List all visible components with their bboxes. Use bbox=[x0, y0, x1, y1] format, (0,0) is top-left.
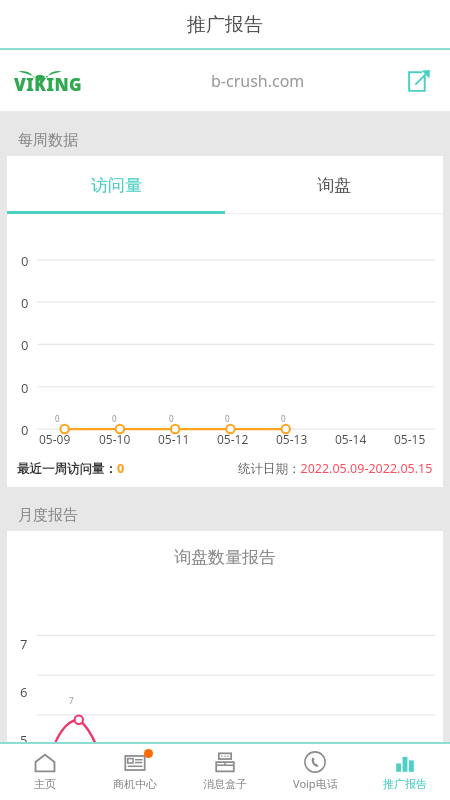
staticText: 统计日期：2022.05.09-2022.05.15 bbox=[238, 460, 433, 477]
staticText: 5 bbox=[20, 731, 28, 749]
staticText: Voip电话 bbox=[293, 776, 338, 791]
staticText: 05-10 bbox=[99, 431, 131, 447]
staticText: 0 bbox=[21, 336, 29, 354]
staticText: 05-14 bbox=[335, 431, 367, 447]
staticText: 主页 bbox=[34, 777, 56, 791]
staticText: 推广报告 bbox=[383, 777, 427, 791]
staticText: 访问量 bbox=[91, 175, 142, 196]
staticText: b-crush.com bbox=[211, 70, 305, 92]
staticText: 05-11 bbox=[158, 431, 190, 447]
staticText: 0 bbox=[21, 252, 29, 270]
staticText: 05-12 bbox=[217, 431, 249, 447]
staticText: 7 bbox=[69, 695, 74, 706]
button[interactable]: 主页 bbox=[0, 742, 90, 800]
staticText: 7 bbox=[20, 635, 28, 653]
staticText: 0 bbox=[21, 294, 29, 312]
staticText: 推广报告 bbox=[187, 13, 263, 37]
staticText: 0 bbox=[281, 413, 286, 424]
staticText: 消息盒子 bbox=[203, 777, 247, 791]
button[interactable]: 访问量 bbox=[7, 156, 225, 214]
button[interactable]: 推广报告 bbox=[360, 742, 450, 800]
staticText: 0 bbox=[21, 379, 29, 397]
staticText: 0 bbox=[169, 413, 174, 424]
staticText: 询盘数量报告 bbox=[174, 547, 276, 568]
staticText: VIKING bbox=[14, 73, 83, 96]
staticText: 0 bbox=[21, 421, 29, 439]
staticText: 商机中心 bbox=[113, 777, 157, 791]
staticText: 0 bbox=[55, 413, 60, 424]
button[interactable]: 商机中心 bbox=[90, 742, 180, 800]
button[interactable]: Voip电话 bbox=[270, 742, 360, 800]
staticText: 05-13 bbox=[276, 431, 308, 447]
staticText: 最近一周访问量：0 bbox=[17, 460, 125, 477]
staticText: 0 bbox=[112, 413, 117, 424]
staticText: 05-15 bbox=[394, 431, 426, 447]
staticText: 月度报告 bbox=[18, 506, 78, 525]
staticText: 05-09 bbox=[39, 431, 71, 447]
staticText: 询盘 bbox=[317, 175, 351, 196]
staticText: 6 bbox=[20, 683, 28, 701]
staticText: 每周数据 bbox=[18, 131, 78, 150]
staticText: 0 bbox=[225, 413, 230, 424]
button[interactable]: 询盘 bbox=[225, 156, 443, 214]
button[interactable]: Open website bbox=[402, 64, 436, 98]
button[interactable]: 消息盒子 bbox=[180, 742, 270, 800]
